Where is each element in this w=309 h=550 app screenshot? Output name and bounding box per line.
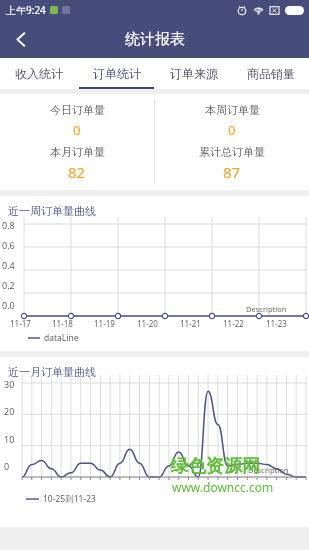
staticText: 今日订单量 xyxy=(50,103,105,117)
staticText: dataLine xyxy=(44,332,79,344)
staticText: 30 xyxy=(4,378,15,390)
staticText: 20 xyxy=(4,405,15,417)
staticText: 商品销量 xyxy=(247,66,295,81)
staticText: 近一月订单量曲线 xyxy=(8,365,96,379)
button[interactable]: 收入统计 xyxy=(0,58,78,89)
staticText: 0.0 xyxy=(2,299,15,311)
staticText: 本月订单量 xyxy=(50,145,105,159)
staticText: 上午9:24 xyxy=(6,3,46,17)
staticText: 统计报表 xyxy=(125,30,185,49)
staticText: 11-19 xyxy=(94,318,137,329)
staticText: 11-22 xyxy=(223,318,266,329)
staticText: 0.8 xyxy=(2,219,15,231)
staticText: 0.6 xyxy=(2,239,15,251)
staticText: 87 xyxy=(223,162,241,182)
staticText: Description xyxy=(246,304,287,314)
staticText: 订单来源 xyxy=(170,66,218,81)
button[interactable]: Back xyxy=(0,20,42,58)
staticText: 绿色资源网 xyxy=(170,455,260,478)
button[interactable]: 商品销量 xyxy=(232,58,309,89)
staticText: www.downcc.com xyxy=(172,479,274,495)
staticText: 0 xyxy=(228,121,236,139)
button[interactable]: 订单来源 xyxy=(155,58,232,89)
staticText: 本周订单量 xyxy=(205,103,260,117)
staticText: 0 xyxy=(73,121,81,139)
staticText: 订单统计 xyxy=(93,66,141,81)
staticText: 11-21 xyxy=(180,318,223,329)
staticText: 10 xyxy=(4,433,15,445)
staticText: 11-23 xyxy=(266,318,309,329)
staticText: 11-18 xyxy=(52,318,94,329)
button[interactable]: 今日订单量 xyxy=(0,94,154,190)
staticText: 0 xyxy=(4,460,10,472)
staticText: 0.2 xyxy=(2,279,15,291)
staticText: 近一周订单量曲线 xyxy=(8,204,96,218)
staticText: 收入统计 xyxy=(15,66,63,81)
button[interactable]: 订单统计 xyxy=(78,58,155,89)
staticText: Description xyxy=(248,465,289,475)
staticText: 累计总订单量 xyxy=(199,145,265,159)
button[interactable]: 本周订单量 xyxy=(155,94,309,190)
staticText: 11-20 xyxy=(137,318,180,329)
staticText: 0.4 xyxy=(2,259,15,271)
staticText: 11-17 xyxy=(10,318,52,329)
staticText: 10-25到11-23 xyxy=(43,493,96,505)
staticText: 82 xyxy=(68,162,86,182)
